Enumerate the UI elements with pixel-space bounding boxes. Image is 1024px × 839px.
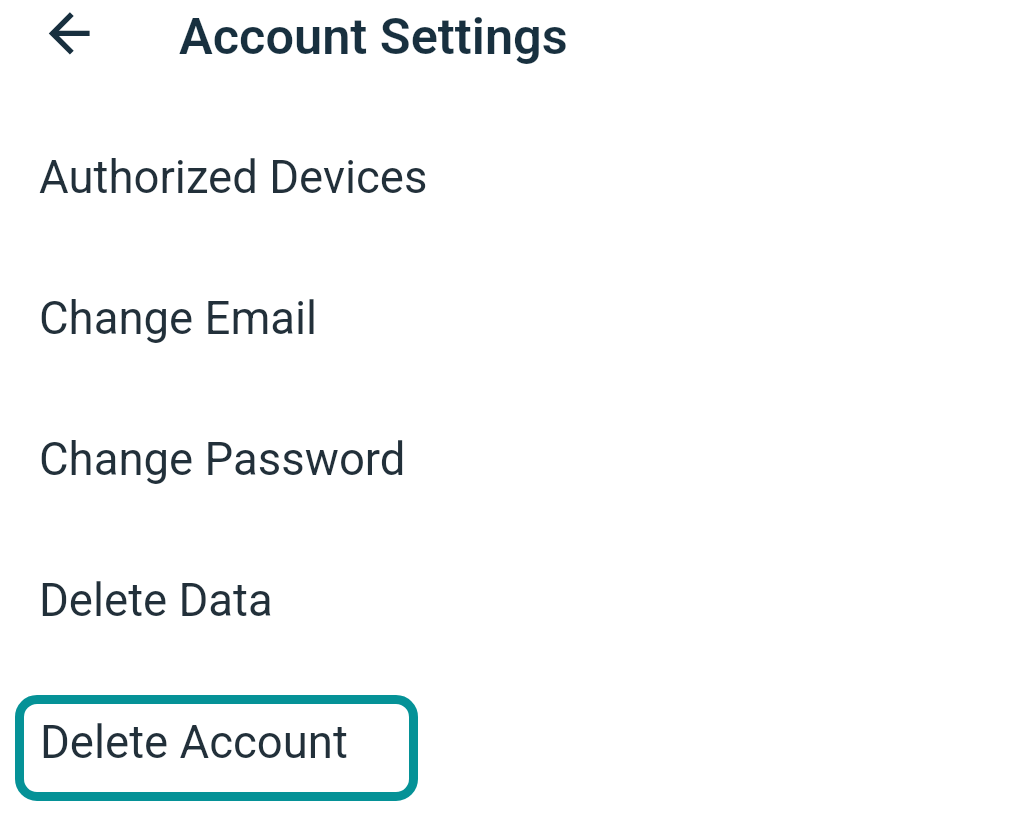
button[interactable]: Change Email [0,241,1024,382]
staticText: Delete Data [39,574,273,627]
button[interactable]: Change Password [0,382,1024,523]
button[interactable]: Back [30,0,110,68]
staticText: Authorized Devices [39,151,428,204]
button[interactable]: Delete Data [0,523,1024,664]
staticText: Account Settings [179,7,568,66]
staticText: Change Password [39,433,406,486]
button[interactable]: Delete Account [15,695,418,801]
staticText: Change Email [39,292,318,345]
staticText: Delete Account [40,716,348,769]
button[interactable]: Authorized Devices [0,100,1024,241]
